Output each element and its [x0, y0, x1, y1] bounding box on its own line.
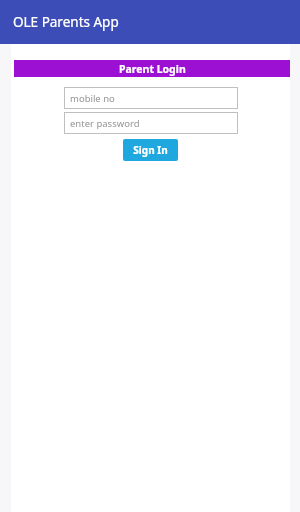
button[interactable]: enter password [64, 112, 238, 134]
staticText: Parent Login [119, 62, 186, 76]
staticText: enter password [70, 117, 140, 130]
button[interactable]: mobile no [64, 87, 238, 109]
button[interactable]: Parent Login [14, 60, 290, 77]
staticText: mobile no [70, 92, 115, 105]
staticText: OLE Parents App [13, 13, 119, 31]
staticText: Sign In [133, 143, 168, 157]
button[interactable]: Sign In [123, 139, 178, 161]
